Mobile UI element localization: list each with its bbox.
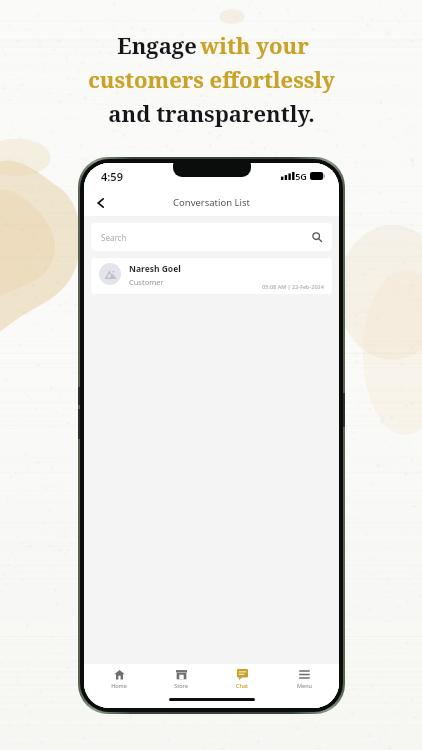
button[interactable]: Back xyxy=(90,192,112,214)
staticText: 5G xyxy=(295,170,307,182)
button[interactable]: Menu xyxy=(277,664,331,694)
button[interactable]: Home xyxy=(92,664,146,694)
staticText: Home xyxy=(111,682,127,689)
staticText: with your xyxy=(200,30,309,60)
staticText: Conversation List xyxy=(173,196,250,209)
staticText: customers effortlessly xyxy=(88,64,335,94)
staticText: 05:08 AM | 22-Feb-2024 xyxy=(262,283,324,290)
staticText: Menu xyxy=(297,682,312,689)
button[interactable]: Naresh Goel xyxy=(91,258,332,294)
staticText: Engage xyxy=(114,30,200,60)
button[interactable]: Search xyxy=(91,223,332,251)
button[interactable]: Chat xyxy=(215,664,269,694)
staticText: Store xyxy=(174,682,188,689)
staticText: 4:59 xyxy=(101,169,123,184)
staticText: Naresh Goel xyxy=(129,263,181,275)
staticText: Chat xyxy=(236,682,248,689)
staticText: Search xyxy=(101,232,312,243)
staticText: Customer xyxy=(129,277,164,287)
staticText: and transparently. xyxy=(108,98,315,128)
other: Search xyxy=(312,232,322,242)
button[interactable]: Store xyxy=(154,664,208,694)
